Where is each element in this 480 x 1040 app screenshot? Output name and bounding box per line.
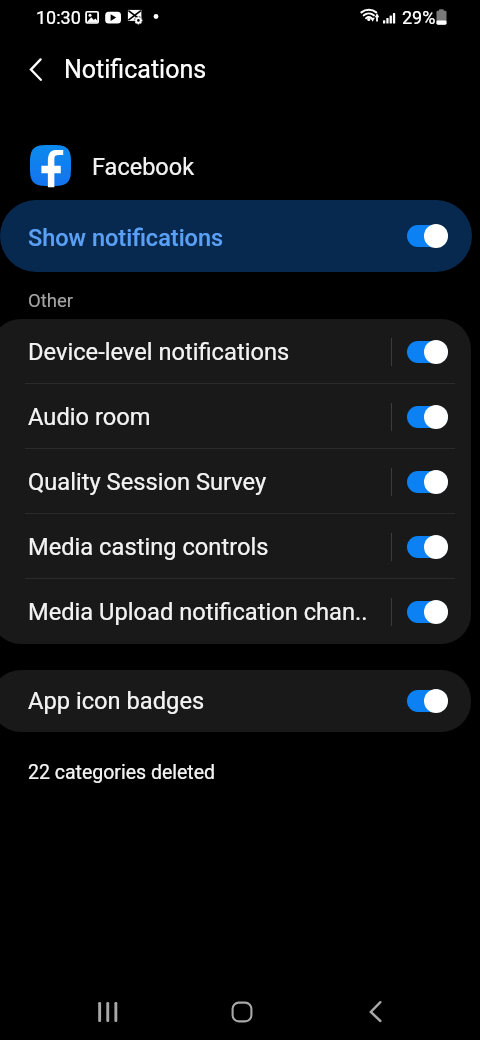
button[interactable]: Audio room	[0, 384, 471, 449]
button[interactable]: Device-level notifications	[0, 319, 471, 384]
staticText: Media Upload notification chan..	[28, 598, 385, 626]
button[interactable]: Quality Session Survey	[0, 449, 471, 514]
button[interactable]: Media casting controls	[0, 514, 471, 579]
staticText: App icon badges	[28, 687, 407, 715]
button[interactable]: Back	[14, 46, 58, 90]
button[interactable]: Recent apps	[64, 984, 152, 1040]
button[interactable]: Back	[332, 984, 420, 1040]
button[interactable]: App icon badges	[0, 670, 471, 732]
button[interactable]: Media Upload notification chan..	[0, 579, 471, 644]
staticText: 10:30	[36, 7, 81, 28]
staticText: Device-level notifications	[28, 338, 385, 366]
staticText: Facebook	[92, 153, 195, 181]
staticText: 22 categories deleted	[28, 761, 216, 784]
staticText: Other	[28, 290, 74, 312]
staticText: Media casting controls	[28, 533, 385, 561]
button[interactable]: Show notifications	[0, 200, 472, 272]
staticText: Notifications	[64, 55, 207, 84]
staticText: 29%	[402, 7, 436, 28]
staticText: Quality Session Survey	[28, 468, 385, 496]
staticText: Audio room	[28, 403, 385, 431]
button[interactable]: Home	[198, 984, 286, 1040]
staticText: Show notifications	[28, 224, 407, 252]
